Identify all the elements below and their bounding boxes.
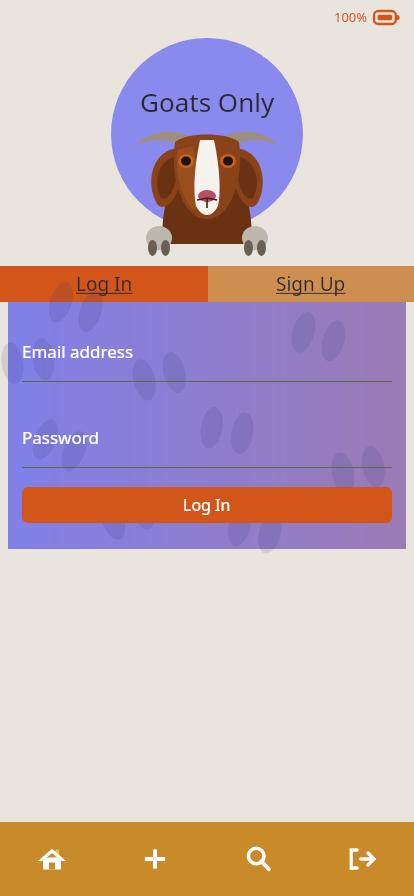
button[interactable]: Log out: [310, 822, 414, 896]
button[interactable]: Home: [0, 822, 103, 896]
button[interactable]: Sign Up: [208, 266, 414, 302]
button[interactable]: Log In: [22, 487, 392, 523]
staticText: Goats Only: [140, 84, 275, 119]
button[interactable]: Log In: [0, 266, 208, 302]
staticText: 100%: [334, 8, 368, 26]
staticText: Email address: [22, 340, 134, 363]
staticText: Log In: [183, 494, 231, 516]
button[interactable]: Add: [103, 822, 206, 896]
button[interactable]: Search: [206, 822, 310, 896]
staticText: Log In: [76, 271, 133, 297]
staticText: Password: [22, 426, 99, 449]
staticText: Sign Up: [276, 271, 346, 297]
